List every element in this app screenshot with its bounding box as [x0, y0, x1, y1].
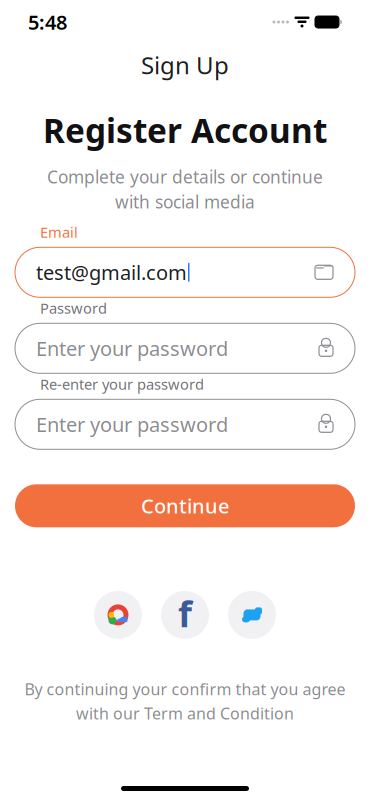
staticText: By continuing your confirm that you agre… [24, 678, 345, 699]
button[interactable]: Continue with Twitter [228, 591, 276, 639]
staticText: with social media [115, 190, 255, 213]
staticText: with our Term and Condition [76, 703, 294, 724]
staticText: Continue [141, 492, 229, 519]
staticText: 5:48 [28, 9, 67, 35]
button[interactable]: Continue [15, 484, 355, 527]
staticText: test@gmail.com [36, 259, 187, 286]
button[interactable]: Continue with Google [94, 591, 142, 639]
staticText: Email [40, 222, 78, 242]
staticText: f [178, 589, 192, 637]
staticText: Sign Up [141, 49, 229, 81]
staticText: Enter your password [36, 411, 228, 438]
staticText: Enter your password [36, 335, 228, 362]
button[interactable]: Continue with Facebook [161, 589, 209, 640]
staticText: Complete your details or continue [47, 165, 323, 188]
staticText: Register Account [43, 108, 327, 152]
staticText: Re-enter your password [40, 374, 204, 394]
staticText: Password [40, 298, 107, 318]
